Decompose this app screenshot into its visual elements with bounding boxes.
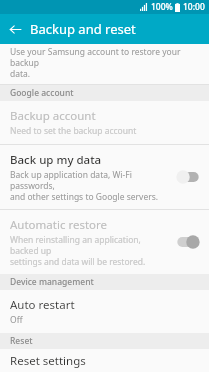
staticText: Use your Samsung account to restore your…	[10, 46, 199, 79]
staticText: Backup and reset	[30, 20, 136, 38]
button[interactable]: Use your Samsung account to restore your…	[0, 44, 209, 84]
button[interactable]: Automatic restore	[0, 210, 209, 274]
button[interactable]: On	[175, 234, 201, 250]
staticText: Off	[10, 314, 23, 326]
staticText: Auto restart	[10, 297, 75, 313]
staticText: Reset settings	[10, 353, 86, 369]
staticText: Back up application data, Wi-Fi password…	[10, 169, 169, 202]
button[interactable]: Backup account	[0, 101, 209, 144]
button[interactable]: Back up my data	[0, 145, 209, 209]
staticText: When reinstalling an application, backed…	[10, 234, 169, 267]
staticText: 10:00	[183, 1, 205, 13]
staticText: Device management	[10, 276, 94, 288]
staticText: Google account	[10, 87, 74, 99]
staticText: 100%	[151, 1, 173, 13]
staticText: Reset	[10, 335, 33, 347]
staticText: Need to set the backup account	[10, 125, 137, 137]
button[interactable]: Reset settings	[0, 349, 209, 372]
button[interactable]: Auto restart	[0, 290, 209, 333]
staticText: Back up my data	[10, 152, 102, 168]
button[interactable]: Navigate up	[0, 14, 30, 44]
button[interactable]: Off	[175, 169, 201, 185]
staticText: Backup account	[10, 108, 96, 124]
staticText: Automatic restore	[10, 217, 108, 233]
